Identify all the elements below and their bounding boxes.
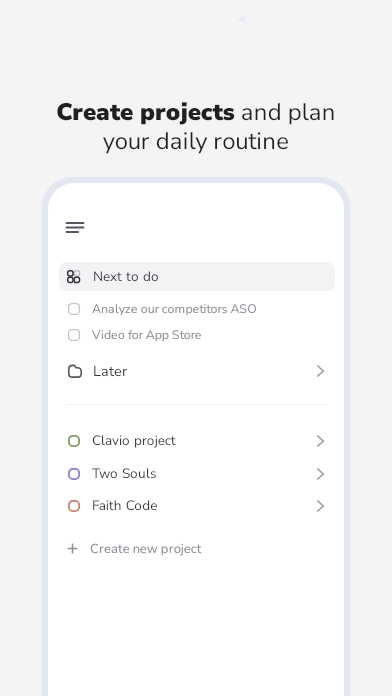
button[interactable]: Video for App Store (59, 324, 335, 345)
button[interactable]: Open menu (57, 212, 93, 242)
button[interactable]: Next to do (59, 262, 335, 291)
staticText: Next to do (93, 268, 159, 286)
staticText: Two Souls (92, 465, 156, 483)
staticText: Create new project (90, 540, 202, 557)
staticText: Analyze our competitors ASO (92, 300, 257, 317)
button[interactable]: Analyze our competitors ASO (59, 298, 335, 319)
staticText: Later (93, 362, 127, 381)
staticText: Faith Code (92, 497, 157, 515)
button[interactable]: Create new project (59, 537, 335, 559)
button[interactable]: Two Souls (59, 463, 335, 485)
staticText: Video for App Store (92, 326, 202, 343)
staticText: Clavio project (92, 432, 176, 450)
button[interactable]: Later (59, 359, 335, 383)
button[interactable]: Clavio project (59, 430, 335, 452)
button[interactable]: Faith Code (59, 495, 335, 517)
